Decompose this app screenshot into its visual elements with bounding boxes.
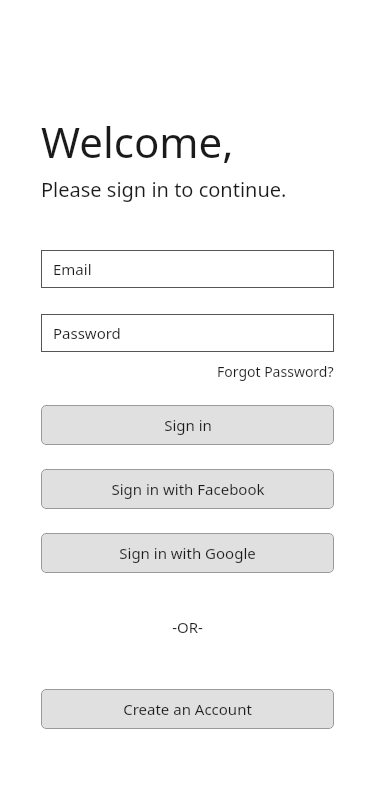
button[interactable]: Password xyxy=(41,314,334,352)
staticText: Sign in xyxy=(164,415,212,435)
button[interactable]: Create an Account xyxy=(41,689,334,729)
button[interactable]: Forgot Password? xyxy=(217,360,334,383)
staticText: Sign in with Facebook xyxy=(111,479,265,499)
button[interactable]: Sign in with Facebook xyxy=(41,469,334,509)
staticText: Forgot Password? xyxy=(217,362,334,381)
staticText: -OR- xyxy=(172,617,203,637)
staticText: Welcome, xyxy=(41,113,234,170)
button[interactable]: Email xyxy=(41,250,334,288)
button[interactable]: Sign in with Google xyxy=(41,533,334,573)
staticText: Please sign in to continue. xyxy=(41,176,287,203)
staticText: Sign in with Google xyxy=(119,543,256,563)
staticText: Create an Account xyxy=(123,699,252,719)
staticText: Email xyxy=(53,259,92,279)
staticText: Password xyxy=(53,323,121,343)
button[interactable]: Sign in xyxy=(41,405,334,445)
